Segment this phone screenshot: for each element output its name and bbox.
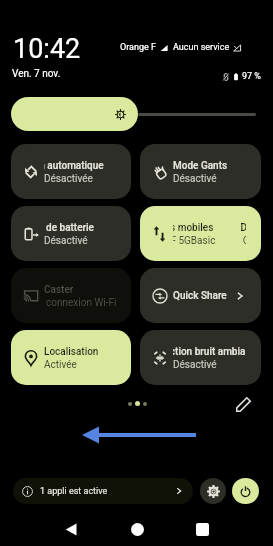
button[interactable]: Power xyxy=(232,478,259,504)
button[interactable]: Brightness xyxy=(11,97,138,131)
staticText: Désactivé xyxy=(173,174,217,185)
staticText: 1 appli est active xyxy=(40,486,108,497)
staticText: 10:42 xyxy=(13,33,81,65)
button[interactable]: Home xyxy=(104,514,170,544)
staticText: Désactivé xyxy=(173,360,217,371)
button[interactable]: Rotation automatique xyxy=(11,144,131,199)
button[interactable]: 1 appli est active xyxy=(13,478,193,504)
staticText: Activée xyxy=(44,360,77,371)
button[interactable]: Mode Gants xyxy=(140,144,261,199)
button[interactable]: Localisation xyxy=(11,330,131,385)
staticText: Rotation automatique xyxy=(44,161,79,172)
staticText: Aucune connexion Wi-Fi xyxy=(44,298,82,309)
button[interactable]: Économiseur de batterie xyxy=(11,206,131,261)
button[interactable]: Settings xyxy=(200,478,226,504)
button[interactable]: Caster xyxy=(11,268,131,323)
staticText: 97 % xyxy=(242,71,261,82)
button[interactable]: Données mobiles Données mobiles xyxy=(140,206,261,261)
staticText: Quick Share xyxy=(173,291,227,302)
staticText: Désactivé xyxy=(44,236,88,247)
button[interactable]: Recents xyxy=(169,514,235,544)
staticText: Localisation xyxy=(44,347,99,358)
staticText: Économiseur de batterie xyxy=(44,223,57,234)
staticText: Désactivée xyxy=(44,174,93,185)
button[interactable]: Edit tiles xyxy=(233,394,254,415)
button[interactable]: Back xyxy=(38,514,104,544)
staticText: Mode Gants xyxy=(173,161,228,172)
staticText: Orange F 5GBasic Orange F 5GBasic xyxy=(173,236,209,247)
staticText: Orange F xyxy=(120,42,156,53)
button[interactable]: Quick Share xyxy=(140,268,261,323)
button[interactable]: Réduction bruit ambiant xyxy=(140,330,261,385)
staticText: Ven. 7 nov. xyxy=(12,68,61,80)
staticText: Caster xyxy=(44,285,74,296)
staticText: Données mobiles Données mobiles xyxy=(173,223,209,234)
staticText: Aucun service xyxy=(173,42,230,53)
staticText: Réduction bruit ambiant xyxy=(173,347,220,358)
